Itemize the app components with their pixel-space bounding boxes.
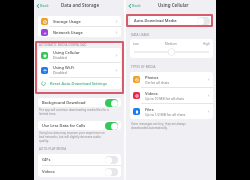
staticText: GIFs xyxy=(42,157,105,162)
staticText: Using Wi-Fi xyxy=(53,65,75,70)
staticText: On for all chats xyxy=(145,80,170,85)
button[interactable]: Switch off xyxy=(105,156,118,164)
staticText: Voice messages are tiny, they are always… xyxy=(131,122,186,130)
button[interactable]: Use Less Data for Calls xyxy=(38,121,121,130)
staticText: Data and Storage xyxy=(61,2,100,8)
staticText: Up to 10 MB for all chats xyxy=(145,96,185,101)
staticText: Using Cellular xyxy=(53,50,80,55)
button[interactable]: Files xyxy=(130,104,213,119)
button[interactable]: Videos xyxy=(130,88,213,103)
staticText: Disabled xyxy=(53,70,67,75)
button[interactable]: Reset Auto-Download Settings xyxy=(38,78,121,89)
staticText: Background Download xyxy=(42,100,105,105)
staticText: AUTO-PLAY MEDIA xyxy=(39,147,67,151)
button[interactable]: Videos xyxy=(38,166,121,177)
staticText: Up to 1/2 MB for all chats xyxy=(145,112,186,117)
staticText: TYPES OF MEDIA xyxy=(131,65,156,69)
staticText: Back xyxy=(40,3,49,8)
button[interactable]: Data usage slider xyxy=(133,49,210,55)
staticText: High xyxy=(203,42,210,46)
staticText: Files xyxy=(145,107,154,112)
button[interactable]: Back xyxy=(37,3,49,8)
staticText: Disabled xyxy=(53,55,67,60)
staticText: Back xyxy=(132,3,141,8)
staticText: DATA USAGE xyxy=(131,33,150,37)
button[interactable]: Storage Usage xyxy=(38,16,121,26)
button[interactable]: Switch on xyxy=(105,122,118,130)
staticText: Videos xyxy=(145,91,158,96)
staticText: Low xyxy=(133,42,139,46)
staticText: Videos xyxy=(42,169,105,174)
staticText: AUTOMATIC MEDIA DOWNLOAD xyxy=(39,43,87,47)
staticText: Network Usage xyxy=(53,30,83,35)
button[interactable]: Using Cellular xyxy=(38,48,121,62)
staticText: Reset Auto-Download Settings xyxy=(50,81,107,86)
staticText: Medium xyxy=(165,42,177,46)
button[interactable]: Auto-Download Media xyxy=(130,16,213,25)
button[interactable]: Photos xyxy=(130,72,213,87)
button[interactable]: Switch off xyxy=(105,168,118,176)
staticText: Photos xyxy=(145,75,159,80)
staticText: The app will continue downloading media … xyxy=(39,108,109,116)
staticText: Using Cellular xyxy=(158,2,189,8)
staticText: Storage Usage xyxy=(53,19,81,24)
button[interactable]: Network Usage xyxy=(38,27,121,37)
button[interactable]: Background Download xyxy=(38,98,121,107)
button[interactable]: Switch off xyxy=(197,17,210,25)
staticText: Use Less Data for Calls xyxy=(42,123,105,128)
button[interactable]: Back xyxy=(129,3,141,8)
staticText: Auto-Download Media xyxy=(134,18,197,23)
staticText: Using less data may improve your experie… xyxy=(39,131,105,143)
button[interactable]: Switch on xyxy=(105,99,118,107)
button[interactable]: Using Wi-Fi xyxy=(38,63,121,77)
button[interactable]: GIFs xyxy=(38,154,121,165)
